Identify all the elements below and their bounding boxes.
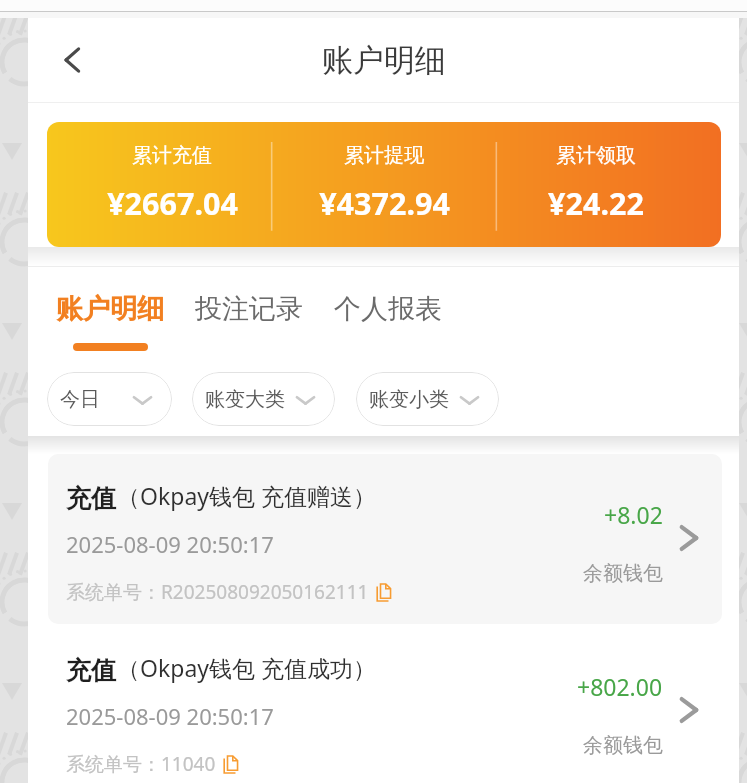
button[interactable]: 账变大类: [192, 372, 335, 426]
staticText: 2025-08-09 20:50:17: [66, 701, 274, 731]
button[interactable]: 充值: [48, 626, 722, 783]
button[interactable]: 账户明细: [56, 292, 164, 351]
staticText: 余额钱包: [583, 733, 663, 758]
staticText: 个人报表: [334, 292, 442, 326]
button[interactable]: 投注记录: [195, 292, 303, 351]
staticText: ¥24.22: [548, 182, 644, 224]
button[interactable]: 账变小类: [356, 372, 499, 426]
staticText: ¥4372.94: [319, 182, 450, 224]
staticText: 系统单号：R202508092050162111: [66, 579, 369, 605]
staticText: 累计领取: [556, 143, 636, 168]
button[interactable]: 个人报表: [334, 292, 442, 351]
staticText: +8.02: [604, 499, 663, 530]
staticText: 账变小类: [369, 387, 449, 412]
staticText: 账户明细: [56, 292, 164, 326]
staticText: 投注记录: [195, 292, 303, 326]
button[interactable]: Back: [42, 30, 102, 90]
button[interactable]: 今日: [47, 372, 172, 426]
staticText: 累计提现: [344, 143, 424, 168]
staticText: 充值: [66, 655, 116, 686]
staticText: （Okpay钱包 充值赠送）: [117, 480, 377, 511]
staticText: 2025-08-09 20:50:17: [66, 529, 274, 559]
staticText: 账户明细: [322, 41, 446, 80]
staticText: ¥2667.04: [107, 182, 238, 224]
staticText: +802.00: [577, 671, 663, 702]
staticText: 账变大类: [205, 387, 285, 412]
staticText: 今日: [60, 387, 100, 412]
staticText: 累计充值: [132, 143, 212, 168]
staticText: （Okpay钱包 充值成功）: [117, 652, 377, 683]
button[interactable]: 充值: [48, 454, 722, 624]
staticText: 余额钱包: [583, 561, 663, 586]
staticText: 系统单号：11040: [66, 751, 216, 777]
staticText: 充值: [66, 483, 116, 514]
